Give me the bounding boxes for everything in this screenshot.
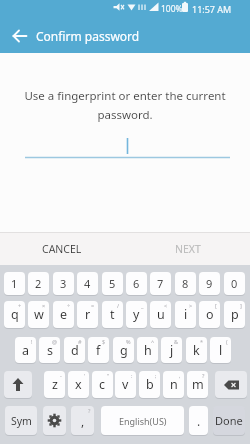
staticText: 100% [161, 3, 183, 15]
button[interactable]: i [175, 301, 196, 328]
button[interactable]: English(US) [101, 406, 184, 435]
button[interactable]: u [150, 301, 171, 328]
staticText: & [174, 338, 179, 345]
staticText: k [193, 342, 200, 359]
staticText: d [71, 342, 79, 359]
staticText: e [60, 306, 68, 323]
button[interactable]: d [64, 337, 85, 363]
button[interactable]: b [139, 371, 160, 398]
staticText: p [231, 306, 239, 323]
button[interactable]: . [189, 406, 208, 435]
button[interactable]: 3 [53, 272, 74, 295]
button[interactable]: , [71, 406, 94, 435]
staticText: 2 [35, 276, 42, 291]
staticText: f [96, 342, 101, 359]
button[interactable] [6, 25, 34, 47]
button[interactable]: p [224, 301, 245, 328]
button[interactable]: j [161, 337, 182, 363]
staticText: . [197, 413, 201, 429]
staticText: t [110, 306, 115, 323]
staticText: = [91, 302, 95, 309]
staticText: z [52, 376, 58, 393]
button[interactable]: h [137, 337, 158, 363]
staticText: ? [88, 407, 91, 414]
button[interactable]: l [210, 337, 231, 363]
button[interactable]: t [102, 301, 123, 328]
staticText: : [131, 372, 133, 379]
staticText: Done [215, 413, 243, 428]
button[interactable]: 6 [126, 272, 147, 295]
button[interactable]: c [92, 371, 113, 398]
staticText: g [120, 342, 128, 359]
staticText: r [85, 306, 91, 323]
button[interactable]: r [77, 301, 98, 328]
staticText: ? [202, 372, 205, 379]
button[interactable]: x [68, 371, 89, 398]
button[interactable]: q [4, 301, 25, 328]
staticText: [ [215, 302, 217, 309]
staticText: 3 [60, 276, 67, 291]
staticText: Confirm password [36, 28, 140, 44]
button[interactable]: f [88, 337, 109, 363]
button[interactable] [25, 130, 230, 160]
button[interactable]: e [53, 301, 74, 328]
staticText: Use a fingerprint or enter the current p… [0, 88, 250, 122]
staticText: 9 [206, 276, 213, 291]
staticText: $ [102, 338, 106, 345]
button[interactable]: 9 [199, 272, 220, 295]
button[interactable]: NEXT [164, 232, 212, 265]
button[interactable]: 4 [77, 272, 98, 295]
staticText: j [170, 342, 174, 359]
button[interactable]: s [39, 337, 60, 363]
staticText: 5 [109, 276, 116, 291]
button[interactable]: z [44, 371, 65, 398]
staticText: + [18, 302, 22, 309]
staticText: 6 [133, 276, 140, 291]
staticText: a [22, 342, 30, 359]
staticText: l [219, 342, 223, 359]
button[interactable]: y [126, 301, 147, 328]
button[interactable] [43, 406, 66, 435]
staticText: q [11, 306, 19, 323]
button[interactable]: a [15, 337, 36, 363]
staticText: v [122, 376, 129, 393]
button[interactable]: 2 [28, 272, 49, 295]
button[interactable]: v [115, 371, 136, 398]
button[interactable]: 5 [102, 272, 123, 295]
button[interactable]: w [28, 301, 49, 328]
staticText: , [179, 372, 181, 379]
staticText: w [34, 306, 44, 323]
staticText: NEXT [175, 242, 201, 256]
button[interactable]: 7 [150, 272, 171, 295]
staticText: English(US) [119, 415, 167, 427]
button[interactable] [4, 371, 32, 398]
button[interactable]: Sym [5, 406, 37, 435]
button[interactable]: o [199, 301, 220, 328]
button[interactable]: 0 [224, 272, 245, 295]
button[interactable]: CANCEL [30, 232, 94, 265]
button[interactable]: 8 [175, 272, 196, 295]
staticText: o [206, 306, 214, 323]
staticText: " [107, 372, 110, 379]
button[interactable]: Done [213, 406, 245, 435]
staticText: i [184, 306, 188, 323]
button[interactable]: g [113, 337, 134, 363]
button[interactable] [215, 371, 247, 398]
staticText: _ [141, 302, 144, 309]
button[interactable]: 1 [4, 272, 25, 295]
staticText: y [133, 306, 140, 323]
staticText: ( [226, 338, 228, 345]
staticText: ^ [151, 338, 155, 345]
button[interactable]: n [163, 371, 184, 398]
staticText: @ [52, 338, 57, 345]
staticText: 4 [84, 276, 91, 291]
staticText: 1 [11, 276, 18, 291]
button[interactable]: k [186, 337, 207, 363]
staticText: 8 [182, 276, 189, 291]
staticText: u [157, 306, 165, 323]
button[interactable]: m [187, 371, 208, 398]
staticText: > [189, 302, 193, 309]
staticText: c [99, 376, 106, 393]
staticText: 11:57 AM [192, 3, 232, 15]
staticText: 7 [157, 276, 164, 291]
